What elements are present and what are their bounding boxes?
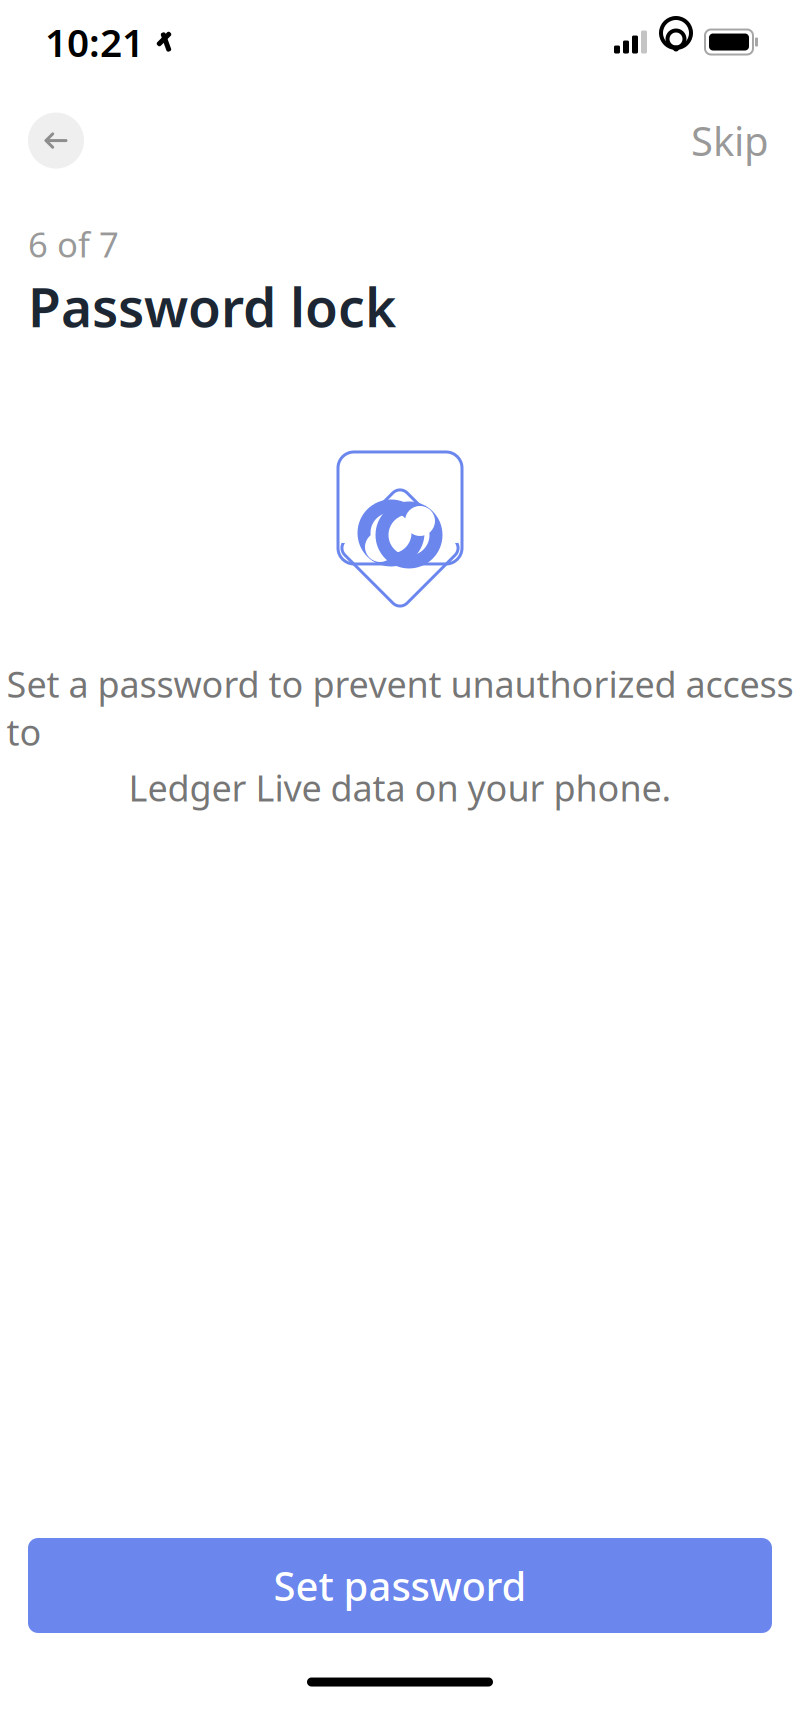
button[interactable]: Back (28, 113, 84, 169)
staticText: Set a password to prevent unauthorized a… (6, 660, 793, 756)
button[interactable]: Set password (28, 1538, 772, 1633)
button[interactable]: Skip (685, 104, 775, 177)
staticText: Ledger Live data on your phone. (128, 764, 671, 811)
staticText: Skip (691, 114, 769, 167)
staticText: 6 of 7 (28, 221, 119, 267)
staticText: Password lock (28, 271, 396, 342)
staticText: 10:21 (45, 16, 144, 68)
staticText: Set password (273, 1559, 526, 1612)
